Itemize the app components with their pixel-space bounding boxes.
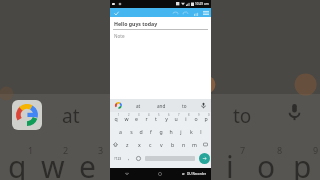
button[interactable]: Undo (172, 10, 179, 17)
button[interactable]: l (196, 125, 206, 138)
staticText: s (130, 128, 133, 135)
staticText: 5 (158, 113, 160, 117)
staticText: 6 (168, 113, 170, 117)
staticText: 0 (208, 113, 210, 117)
button[interactable]: n (178, 138, 189, 151)
button[interactable]: t (151, 112, 161, 125)
button[interactable]: r (141, 112, 151, 125)
staticText: l (200, 128, 202, 135)
staticText: a (119, 128, 122, 135)
button[interactable]: Shift (110, 138, 121, 151)
staticText: 2 (128, 113, 130, 117)
staticText: q (114, 115, 118, 122)
button[interactable]: j (176, 125, 186, 138)
button[interactable]: Voice input (196, 99, 211, 112)
button[interactable]: k (186, 125, 196, 138)
button[interactable]: w (121, 112, 131, 125)
staticText: k (190, 128, 193, 135)
button[interactable]: i (181, 112, 191, 125)
button[interactable]: and (150, 99, 173, 112)
button[interactable]: y (161, 112, 171, 125)
button[interactable]: Backspace (200, 138, 211, 151)
staticText: Note (114, 33, 125, 39)
staticText: m (192, 141, 197, 148)
staticText: o (194, 115, 198, 122)
staticText: j (180, 128, 182, 135)
staticText: 3 (138, 113, 140, 117)
staticText: 4 (148, 113, 150, 117)
staticText: t (155, 115, 157, 122)
staticText: w (41, 146, 65, 180)
staticText: i (226, 146, 234, 180)
button[interactable]: q (110, 112, 121, 125)
button[interactable]: o (191, 112, 201, 125)
button[interactable]: Save note (112, 9, 120, 17)
button[interactable]: z (121, 138, 133, 151)
staticText: 9 (313, 144, 319, 156)
staticText: c (149, 141, 152, 148)
staticText: f (150, 128, 152, 135)
staticText: o (257, 146, 276, 180)
button[interactable]: h (166, 125, 176, 138)
button[interactable]: g (156, 125, 166, 138)
button[interactable]: x (133, 138, 145, 151)
staticText: , (128, 155, 130, 162)
staticText: 8 (188, 113, 190, 117)
button[interactable]: Back (110, 168, 143, 180)
staticText: 9 (198, 113, 200, 117)
staticText: ?123 (114, 156, 122, 161)
button[interactable]: ?123 (111, 151, 124, 165)
button[interactable]: , (124, 151, 133, 165)
button[interactable]: Note (110, 33, 211, 99)
staticText: 10:29 am (195, 2, 209, 6)
staticText: DU Recorder (187, 172, 207, 176)
staticText: b (171, 141, 175, 148)
staticText: to (182, 103, 187, 109)
staticText: 1 (28, 144, 34, 156)
staticText: 7 (240, 144, 246, 156)
button[interactable]: Home (143, 168, 177, 180)
button[interactable]: e (131, 112, 141, 125)
staticText: z (126, 141, 129, 148)
staticText: to (233, 103, 252, 129)
button[interactable]: to (173, 99, 196, 112)
button[interactable]: v (156, 138, 167, 151)
button[interactable]: b (167, 138, 178, 151)
button[interactable]: p (201, 112, 211, 125)
button[interactable]: Redo (182, 10, 189, 17)
staticText: v (160, 141, 163, 148)
button[interactable]: Google search (110, 99, 127, 112)
button[interactable]: at (127, 99, 150, 112)
staticText: g (159, 128, 163, 135)
button[interactable]: a (115, 125, 126, 138)
staticText: n (182, 141, 186, 148)
staticText: 3 (98, 144, 104, 156)
staticText: e (135, 115, 138, 122)
staticText: and (157, 103, 166, 109)
staticText: q (8, 146, 27, 180)
staticText: p (204, 115, 208, 122)
button[interactable]: m (189, 138, 200, 151)
staticText: i (185, 115, 187, 122)
staticText: x (138, 141, 141, 148)
staticText: 7 (178, 113, 180, 117)
staticText: u (174, 115, 178, 122)
button[interactable]: u (171, 112, 181, 125)
staticText: d (139, 128, 143, 135)
button[interactable]: s (126, 125, 136, 138)
button[interactable]: c (145, 138, 156, 151)
button[interactable]: Emoji (133, 151, 144, 165)
staticText: 8 (277, 144, 283, 156)
button[interactable]: Formatting (192, 10, 199, 17)
staticText: 1 (118, 113, 120, 117)
staticText: y (165, 115, 168, 122)
staticText: e (79, 146, 96, 180)
button[interactable]: d (136, 125, 146, 138)
staticText: at (62, 103, 80, 129)
button[interactable]: More options (202, 9, 210, 17)
button[interactable]: Enter (199, 153, 210, 164)
staticText: 2 (63, 144, 69, 156)
staticText: Hello guys today (114, 20, 158, 27)
button[interactable]: f (146, 125, 156, 138)
